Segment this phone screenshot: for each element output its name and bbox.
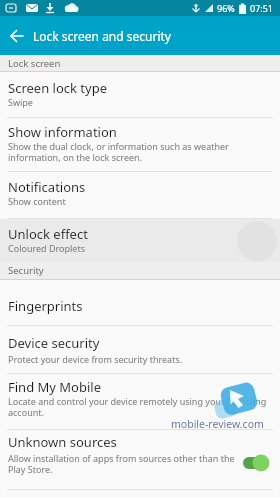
- staticText: Show information: [8, 123, 117, 141]
- staticText: 96%: [217, 2, 235, 14]
- button[interactable]: [0, 16, 33, 55]
- button[interactable]: Fingerprints: [0, 280, 280, 326]
- staticText: Unknown sources: [8, 433, 117, 451]
- staticText: Protect your device from security threat…: [8, 353, 272, 365]
- button[interactable]: Unlock effect: [0, 219, 280, 262]
- button[interactable]: Unknown sources: [0, 430, 280, 490]
- staticText: Lock screen: [8, 57, 61, 70]
- staticText: Security: [8, 264, 44, 277]
- button[interactable]: Find My Mobile: [0, 374, 280, 430]
- staticText: Show the dual clock, or information such…: [8, 140, 252, 163]
- staticText: Lock screen and security: [33, 28, 171, 44]
- staticText: 07:51: [250, 2, 274, 14]
- staticText: Device security: [8, 334, 100, 352]
- staticText: Locate and control your device remotely …: [8, 395, 268, 418]
- staticText: Allow installation of apps from sources …: [8, 452, 236, 475]
- button[interactable]: Device security: [0, 326, 280, 374]
- button[interactable]: Notifications: [0, 172, 280, 219]
- staticText: Screen lock type: [8, 79, 107, 97]
- staticText: mobile-review.com: [171, 417, 264, 431]
- staticText: Notifications: [8, 178, 86, 196]
- staticText: Unlock effect: [8, 225, 88, 243]
- staticText: Show content: [8, 195, 272, 207]
- button[interactable]: Show information: [0, 118, 280, 172]
- button[interactable]: Screen lock type: [0, 72, 280, 118]
- staticText: Find My Mobile: [8, 378, 102, 396]
- staticText: Fingerprints: [8, 297, 83, 315]
- staticText: Coloured Droplets: [8, 242, 272, 254]
- staticText: Swipe: [8, 96, 272, 108]
